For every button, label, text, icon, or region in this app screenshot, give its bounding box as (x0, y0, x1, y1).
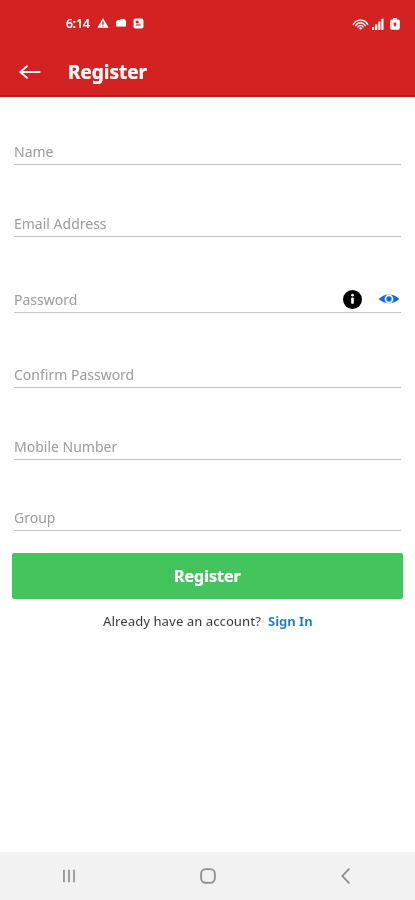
button[interactable]: Mobile Number (14, 432, 401, 460)
button[interactable]: Name (14, 137, 401, 165)
button[interactable]: Password info (341, 288, 363, 310)
staticText: Mobile Number (14, 437, 118, 456)
staticText: Register (68, 59, 148, 85)
staticText: 6:14 (66, 15, 90, 31)
button[interactable]: Register (12, 553, 403, 599)
button[interactable]: Recent apps (45, 852, 93, 900)
button[interactable]: Show password (377, 287, 401, 311)
button[interactable]: Confirm Password (14, 360, 401, 388)
staticText: Already have an account? (103, 612, 261, 630)
staticText: Password (14, 290, 78, 309)
staticText: Name (14, 142, 54, 161)
staticText: Group (14, 508, 56, 527)
staticText: Confirm Password (14, 365, 135, 384)
staticText: Email Address (14, 214, 107, 233)
button[interactable]: Password (14, 285, 401, 313)
button[interactable]: Email Address (14, 209, 401, 237)
staticText: Sign In (268, 612, 313, 630)
button[interactable]: Group (14, 503, 401, 531)
button[interactable]: Home (184, 852, 232, 900)
button[interactable]: Back (9, 51, 51, 93)
button[interactable]: Sign In (261, 610, 313, 632)
staticText: Register (174, 565, 241, 587)
button[interactable]: Back (322, 852, 370, 900)
